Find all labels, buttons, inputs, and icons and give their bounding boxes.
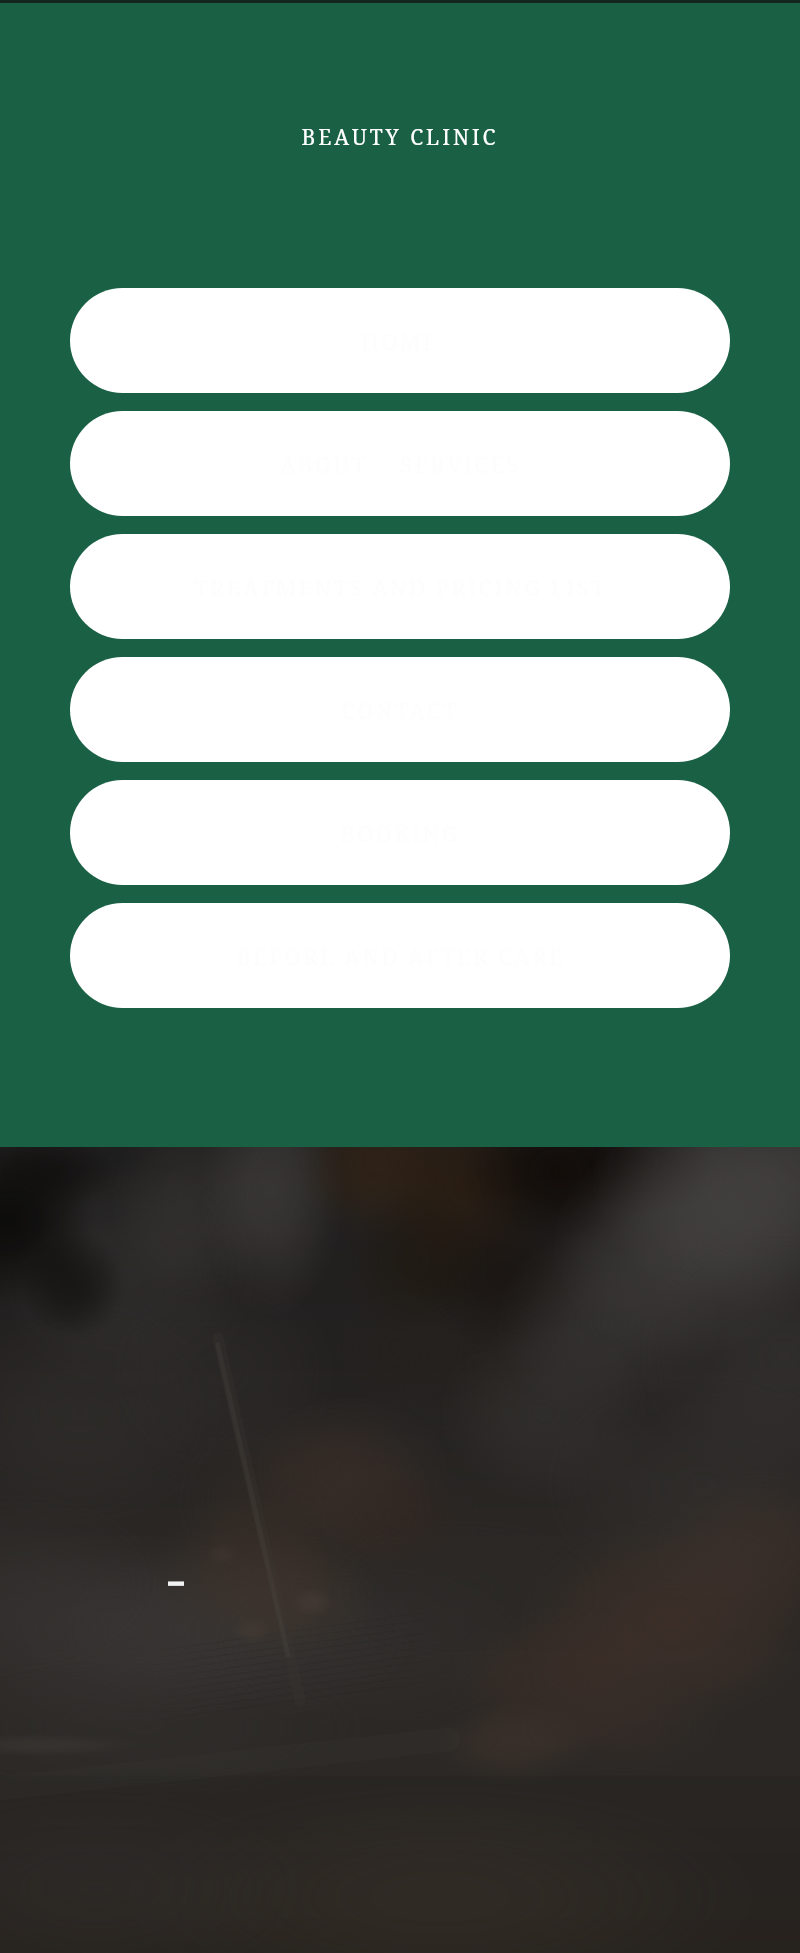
button[interactable]: TREATMENTS AND PRICING LIST — [70, 534, 730, 639]
button[interactable]: BEFORE AND AFTER CARE — [70, 903, 730, 1008]
button[interactable]: Clinic photo — [0, 1147, 800, 1953]
button[interactable]: HOME — [70, 288, 730, 393]
button[interactable]: ABOUT SERVICES — [70, 411, 730, 516]
staticText: BEAUTY CLINIC — [0, 123, 800, 152]
button[interactable]: CONTACT — [70, 657, 730, 762]
button[interactable]: BOOKING — [70, 780, 730, 885]
